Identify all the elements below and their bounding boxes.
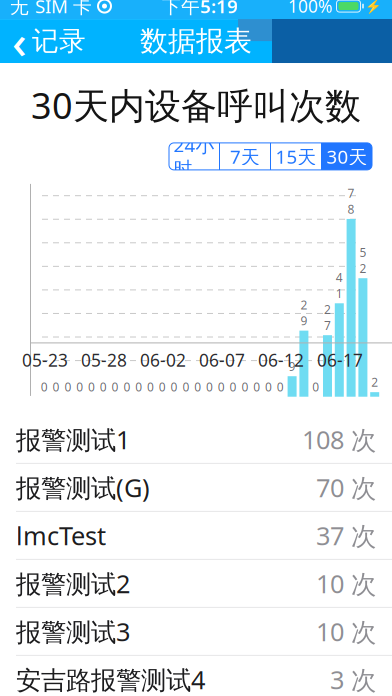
staticText: 报警测试2 [16,567,130,600]
staticText: 0 [123,379,130,395]
staticText: 0 [76,379,83,395]
staticText: 29 [300,297,307,329]
staticText: 10 [6,349,26,372]
staticText: 0 [135,379,142,395]
staticText: 15天 [275,144,316,169]
staticText: 安吉路报警测试4 [16,663,205,696]
staticText: 0 [171,379,178,395]
staticText: 9 [289,358,296,374]
staticText: 报警测试3 [16,615,130,648]
staticText: 37 次 [316,519,376,552]
staticText: 报警测试1 [16,423,130,456]
button[interactable]: 24小时 [169,143,219,170]
staticText: 52 [359,244,366,276]
staticText: 0 [277,379,284,395]
button[interactable]: 30天 [322,143,372,170]
staticText: 7天 [230,144,260,169]
staticText: 数据报表 [140,24,252,58]
staticText: 记录 [32,25,86,57]
staticText: lmcTest [16,519,106,552]
staticText: 2 [371,374,378,390]
button[interactable]: lmcTest [0,512,392,560]
staticText: 30天内设备呼叫次数 [31,81,361,129]
staticText: 0 [253,379,260,395]
staticText: 70 次 [316,471,376,504]
staticText: 0 [194,379,201,395]
staticText: 108 次 [302,423,376,456]
staticText: 0 [265,379,272,395]
button[interactable]: ‹ [0,19,98,63]
staticText: 06-02 [140,348,186,371]
staticText: 0 [53,379,60,395]
staticText: 0 [147,379,154,395]
staticText: 无 SIM 卡 [10,0,92,18]
staticText: 0 [64,379,71,395]
staticText: 06-07 [199,348,245,371]
button[interactable]: 15天 [271,143,321,170]
staticText: 78 [348,185,355,217]
staticText: 0 [182,379,189,395]
staticText: 10 次 [316,567,376,600]
button[interactable]: 报警测试1 [0,416,392,464]
staticText: 3 次 [330,663,376,696]
staticText: 0 [159,379,166,395]
staticText: 30天 [326,144,367,169]
button[interactable]: 报警测试(G) [0,464,392,512]
staticText: 0 [312,379,319,395]
staticText: 05-28 [81,348,127,371]
button[interactable]: 报警测试3 [0,608,392,656]
staticText: ⚡ [365,0,382,14]
staticText: 下午5:19 [162,0,238,18]
staticText: 0 [112,379,119,395]
staticText: 0 [218,379,225,395]
staticText: 06-12 [258,348,304,371]
staticText: 41 [336,269,343,301]
staticText: 06-17 [317,348,363,371]
staticText: 24小时 [173,132,214,180]
staticText: 27 [324,301,331,333]
staticText: 0 [88,379,95,395]
button[interactable]: 报警测试2 [0,560,392,608]
button[interactable]: 安吉路报警测试4 [0,656,392,696]
staticText: 0 [41,379,48,395]
staticText: 0 [100,379,107,395]
staticText: 05-23 [22,348,68,371]
staticText: 0 [230,379,237,395]
staticText: 100% [288,0,332,18]
staticText: 报警测试(G) [16,471,150,504]
staticText: 0 [206,379,213,395]
staticText: 10 次 [316,615,376,648]
button[interactable]: 7天 [220,143,270,170]
staticText: 0 [241,379,248,395]
staticText: ‹ [12,11,27,71]
